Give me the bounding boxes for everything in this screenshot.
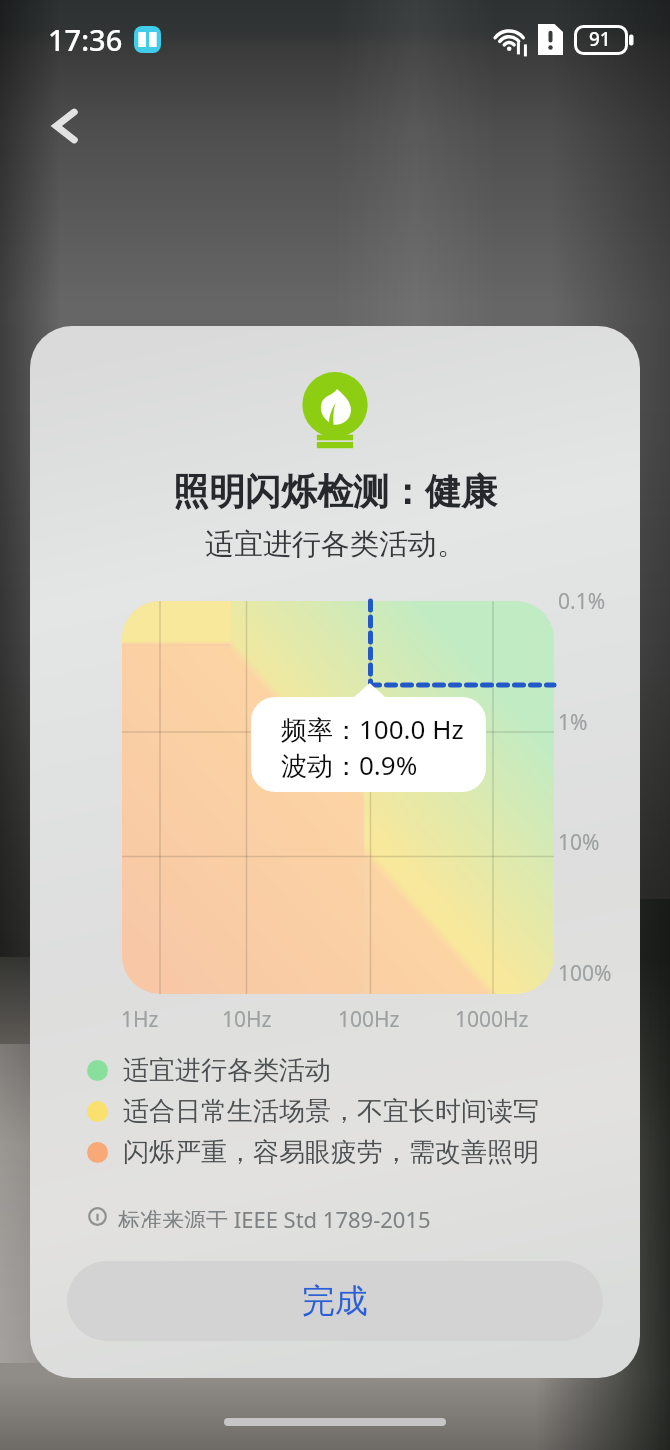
button[interactable]: 适合日常生活场景，不宜长时间读写 [87,1094,607,1128]
staticText: 频率：100.0 Hz [281,711,464,747]
button[interactable]: 完成 [67,1261,603,1341]
staticText: 0.1% [558,587,606,616]
staticText: 适宜进行各类活动。 [205,526,466,563]
button[interactable]: Back [36,97,94,155]
staticText: 照明闪烁检测：健康 [173,469,497,514]
staticText: 适合日常生活场景，不宜长时间读写 [123,1095,539,1128]
staticText: 10Hz [222,1005,272,1034]
staticText: 10% [558,828,600,857]
staticText: 标准来源于 IEEE Std 1789-2015 [118,1204,431,1228]
staticText: 100Hz [338,1005,400,1034]
staticText: 闪烁严重，容易眼疲劳，需改善照明 [123,1136,539,1169]
staticText: 100% [558,959,612,988]
staticText: 波动：0.9% [281,747,418,783]
staticText: 适宜进行各类活动 [123,1054,331,1087]
staticText: 17:36 [48,20,123,59]
staticText: 完成 [302,1280,368,1322]
staticText: 1000Hz [455,1005,529,1034]
staticText: 1Hz [121,1005,159,1034]
staticText: 91 [589,26,611,52]
button[interactable]: 闪烁严重，容易眼疲劳，需改善照明 [87,1135,607,1169]
button[interactable]: 适宜进行各类活动 [87,1053,607,1087]
staticText: 1% [558,708,588,737]
